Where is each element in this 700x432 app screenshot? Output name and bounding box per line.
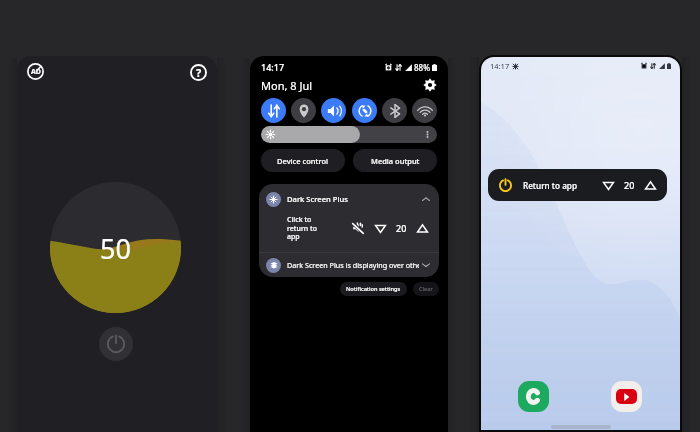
button[interactable]: Quick setting	[412, 98, 437, 123]
staticText: ?	[196, 65, 202, 80]
staticText: Click to return to app	[287, 215, 318, 241]
button[interactable]: Quick setting	[261, 98, 286, 123]
button[interactable]: Dark Screen Plus	[259, 184, 439, 252]
button[interactable]: Help	[188, 62, 209, 83]
staticText: 50	[100, 230, 131, 267]
button[interactable]: Remove ads	[25, 61, 46, 82]
button[interactable]: Quick setting	[321, 98, 346, 123]
button[interactable]: Settings	[423, 78, 437, 92]
button[interactable]: Brightness	[261, 126, 437, 143]
button[interactable]: Quick setting	[291, 98, 316, 123]
button[interactable]: Clear	[413, 282, 439, 296]
staticText: Mon, 8 Jul	[261, 78, 313, 93]
button[interactable]: Quick setting	[352, 98, 377, 123]
staticText: 14:17	[261, 61, 285, 73]
button[interactable]: Notification settings	[340, 282, 407, 296]
button[interactable]: Device control	[261, 149, 345, 172]
staticText: 14:17	[490, 61, 510, 71]
staticText: Dark Screen Plus is displaying over othe…	[287, 260, 419, 270]
staticText: 20	[396, 222, 407, 234]
button[interactable]: Power	[99, 327, 133, 361]
staticText: Media output	[371, 156, 420, 166]
staticText: Clear	[419, 285, 433, 293]
staticText: AD	[31, 67, 41, 77]
button[interactable]: YouTube	[611, 381, 642, 412]
button[interactable]: Dark Screen Plus is displaying over othe…	[259, 253, 439, 277]
button[interactable]: Phone	[518, 381, 549, 412]
button[interactable]: Media output	[353, 149, 437, 172]
staticText: Return to app	[523, 180, 577, 191]
button[interactable]: Quick setting	[382, 98, 407, 123]
staticText: Dark Screen Plus	[287, 194, 348, 204]
staticText: Notification settings	[346, 285, 401, 293]
staticText: 88%	[414, 62, 430, 73]
button[interactable]: Return to app	[488, 169, 667, 201]
staticText: 20	[624, 179, 635, 191]
staticText: Device control	[277, 156, 329, 166]
